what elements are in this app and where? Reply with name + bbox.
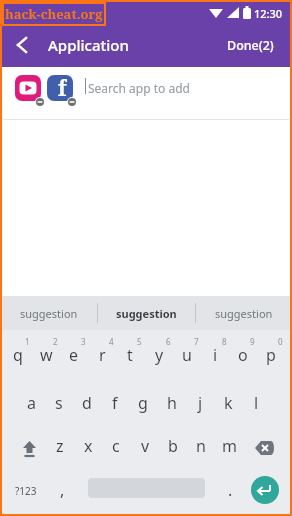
staticText: .	[228, 479, 233, 501]
staticText: suggestion	[215, 306, 273, 321]
staticText: o	[238, 344, 248, 366]
staticText: 4	[109, 336, 114, 346]
staticText: p	[266, 344, 276, 366]
staticText: f	[112, 392, 118, 414]
button[interactable]: j	[186, 391, 214, 415]
button[interactable]: t	[116, 343, 144, 367]
staticText: m	[222, 435, 237, 457]
button[interactable]	[252, 437, 280, 461]
button[interactable]: k	[214, 391, 242, 415]
button[interactable]: s	[45, 391, 73, 415]
staticText: hack-cheat.org	[5, 5, 103, 23]
staticText: suggestion	[20, 306, 78, 321]
staticText: 9	[250, 336, 255, 346]
staticText: q	[13, 344, 23, 366]
staticText: 0	[278, 336, 283, 346]
button[interactable]: Done(2)	[218, 35, 274, 55]
button[interactable]: .	[220, 478, 240, 502]
staticText: s	[55, 392, 63, 414]
staticText: 1	[25, 336, 30, 346]
button[interactable]: y	[145, 343, 173, 367]
staticText: n	[196, 435, 206, 457]
staticText: 12:30	[254, 6, 283, 21]
button[interactable]: suggestion	[196, 296, 292, 330]
staticText: x	[84, 435, 93, 457]
button[interactable]	[15, 75, 41, 101]
staticText: z	[56, 435, 64, 457]
button[interactable]	[251, 476, 279, 504]
button[interactable]: i	[201, 343, 229, 367]
staticText: i	[213, 344, 218, 366]
staticText: ,	[60, 479, 65, 501]
staticText: Done(2)	[227, 37, 274, 54]
button[interactable]	[16, 438, 44, 460]
button[interactable]: x	[74, 434, 102, 458]
button[interactable]: u	[173, 343, 201, 367]
staticText: u	[182, 344, 192, 366]
staticText: suggestion	[116, 306, 177, 321]
staticText: ?123	[15, 484, 37, 498]
staticText: 7	[194, 336, 199, 346]
button[interactable]: n	[187, 434, 215, 458]
staticText: Search app to add	[88, 80, 190, 96]
staticText: Application	[48, 35, 129, 55]
button[interactable]: o	[229, 343, 257, 367]
button[interactable]: b	[159, 434, 187, 458]
button[interactable]: Search app to add	[88, 75, 268, 101]
button[interactable]: ,	[52, 478, 72, 502]
staticText: 3	[81, 336, 86, 346]
staticText: k	[224, 392, 233, 414]
button[interactable]: r	[88, 343, 116, 367]
button[interactable]: a	[17, 391, 45, 415]
button[interactable]: l	[242, 391, 270, 415]
button[interactable]: p	[257, 343, 285, 367]
staticText: t	[127, 344, 133, 366]
button[interactable]: m	[215, 434, 243, 458]
button[interactable]: q	[4, 343, 32, 367]
button[interactable]: v	[131, 434, 159, 458]
button[interactable]: ?123	[10, 481, 42, 501]
staticText: h	[167, 392, 177, 414]
button[interactable]: suggestion	[0, 296, 97, 330]
button[interactable]: h	[158, 391, 186, 415]
staticText: v	[141, 435, 150, 457]
staticText: 8	[222, 336, 227, 346]
button[interactable]: e	[60, 343, 88, 367]
staticText: f	[58, 75, 67, 100]
staticText: c	[112, 435, 120, 457]
button[interactable]: g	[129, 391, 157, 415]
button[interactable]: w	[32, 343, 60, 367]
staticText: r	[99, 344, 106, 366]
button[interactable]: d	[73, 391, 101, 415]
staticText: b	[168, 435, 178, 457]
button[interactable]: f	[101, 391, 129, 415]
staticText: g	[138, 392, 148, 414]
staticText: l	[254, 392, 259, 414]
button[interactable]: f	[47, 75, 73, 101]
button[interactable]: z	[46, 434, 74, 458]
staticText: 6	[166, 336, 171, 346]
button[interactable]: c	[102, 434, 130, 458]
staticText: y	[155, 344, 164, 366]
staticText: j	[198, 392, 203, 414]
staticText: 5	[137, 336, 142, 346]
staticText: d	[82, 392, 92, 414]
staticText: a	[27, 392, 36, 414]
staticText: e	[69, 344, 79, 366]
staticText: 2	[53, 336, 58, 346]
button[interactable]	[8, 33, 36, 57]
staticText: w	[40, 344, 53, 366]
button[interactable]: suggestion	[98, 296, 195, 330]
